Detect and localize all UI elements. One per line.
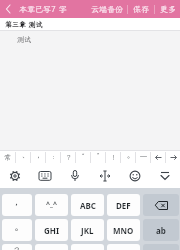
staticText: “ xyxy=(82,153,85,162)
button[interactable]: ^_^ xyxy=(35,194,68,216)
button[interactable] xyxy=(90,164,120,188)
button[interactable]: 第三章 测试 xyxy=(0,18,180,30)
button[interactable]: ： xyxy=(46,151,60,164)
button[interactable]: ab xyxy=(143,219,179,241)
staticText: 云端备份 xyxy=(91,4,123,15)
button[interactable]: 。 xyxy=(2,219,32,241)
staticText: ABC xyxy=(80,200,96,211)
staticText: ab xyxy=(156,225,166,236)
staticText: ” xyxy=(97,153,100,162)
button[interactable] xyxy=(60,164,90,188)
staticText: 更多 xyxy=(160,4,176,15)
button[interactable]: ， xyxy=(31,151,45,164)
staticText: 保存 xyxy=(133,4,149,15)
button[interactable]: 。 xyxy=(121,151,135,164)
button[interactable]: ！ xyxy=(106,151,120,164)
staticText: ， xyxy=(35,153,42,162)
button[interactable]: 更多 xyxy=(155,0,180,18)
staticText: — xyxy=(140,153,147,162)
button[interactable] xyxy=(120,164,150,188)
button[interactable]: PQRS xyxy=(35,244,68,250)
button[interactable] xyxy=(30,164,60,188)
button[interactable]: DEF xyxy=(107,194,140,216)
button[interactable] xyxy=(143,194,179,216)
button[interactable]: JKL xyxy=(71,219,104,241)
staticText: JKL xyxy=(81,225,94,236)
button[interactable]: “ xyxy=(76,151,90,164)
staticText: 第三章 测试 xyxy=(5,20,43,29)
staticText: MNO xyxy=(113,225,134,236)
button[interactable] xyxy=(0,0,16,18)
staticText: DEF xyxy=(116,200,131,211)
staticText: 。 xyxy=(125,153,132,162)
button[interactable]: ， xyxy=(2,194,32,216)
button[interactable]: WXYZ xyxy=(107,244,140,250)
staticText: 测试 xyxy=(17,35,31,44)
button[interactable]: MNO xyxy=(107,219,140,241)
button[interactable]: 常 xyxy=(0,151,15,164)
button[interactable]: 保存 xyxy=(128,0,154,18)
staticText: ： xyxy=(50,153,57,162)
button[interactable]: 云端备份 xyxy=(87,0,127,18)
button[interactable] xyxy=(150,164,180,188)
button[interactable]: — xyxy=(136,151,150,164)
button[interactable]: ” xyxy=(91,151,105,164)
staticText: 常 xyxy=(4,153,11,162)
staticText: ？ xyxy=(12,245,22,250)
button[interactable]: TUV xyxy=(71,244,104,250)
staticText: 。 xyxy=(12,224,22,236)
staticText: ？ xyxy=(65,153,72,162)
button[interactable] xyxy=(0,164,30,188)
staticText: 、 xyxy=(20,153,27,162)
button[interactable]: ？ xyxy=(2,244,32,250)
button[interactable]: GHI xyxy=(35,219,68,241)
staticText: 本章已写7 字 xyxy=(19,4,67,15)
button[interactable] xyxy=(166,151,180,164)
staticText: GHI xyxy=(44,225,60,236)
staticText: ， xyxy=(12,199,22,211)
button[interactable]: 、 xyxy=(16,151,30,164)
staticText: ！ xyxy=(110,153,117,162)
button[interactable] xyxy=(151,151,165,164)
button[interactable]: ABC xyxy=(71,194,104,216)
button[interactable]: ？ xyxy=(61,151,75,164)
staticText: ^_^ xyxy=(46,200,57,210)
